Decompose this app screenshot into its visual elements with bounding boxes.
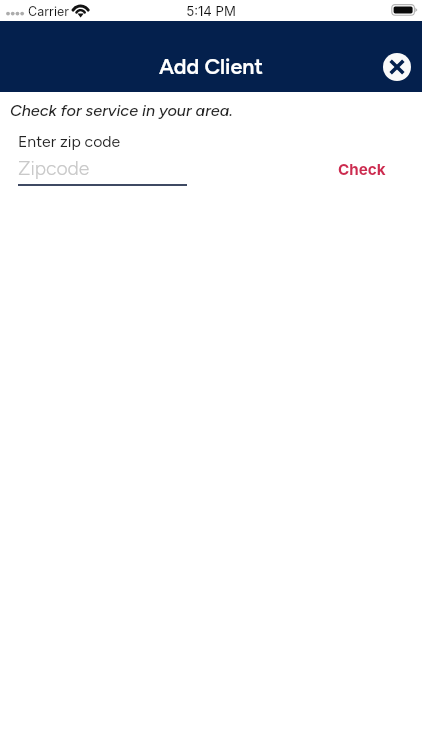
button[interactable]: Check bbox=[330, 155, 394, 183]
staticText: Check bbox=[338, 160, 386, 178]
staticText: Carrier bbox=[28, 4, 69, 19]
staticText: Enter zip code bbox=[18, 132, 121, 151]
button[interactable]: Zip code entry field bbox=[16, 152, 189, 186]
button[interactable]: Close bbox=[383, 53, 411, 81]
staticText: 5:14 PM bbox=[0, 3, 422, 19]
staticText: Check for service in your area. bbox=[10, 101, 233, 120]
staticText: Zipcode bbox=[18, 157, 90, 180]
staticText: Add Client bbox=[159, 54, 263, 80]
